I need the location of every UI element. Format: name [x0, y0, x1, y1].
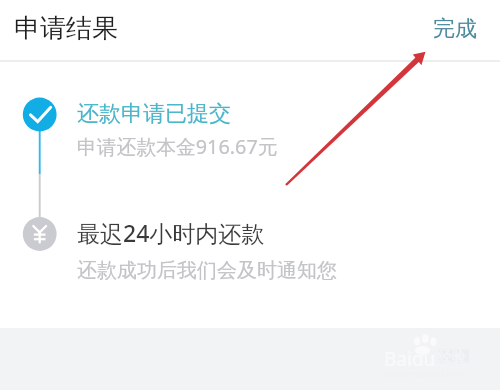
- staticText: 最迟24小时内还款: [77, 217, 265, 248]
- staticText: 申请还款本金916.67元: [77, 133, 278, 160]
- button[interactable]: 最迟24小时内还款: [70, 211, 273, 254]
- staticText: 完成: [433, 15, 477, 43]
- button[interactable]: 还款申请已提交: [70, 94, 239, 134]
- staticText: 还款申请已提交: [77, 100, 231, 128]
- staticText: 申请结果: [14, 12, 118, 45]
- staticText: 还款成功后我们会及时通知您: [77, 258, 337, 283]
- button[interactable]: 申请结果: [0, 8, 128, 49]
- button[interactable]: 完成: [410, 5, 500, 53]
